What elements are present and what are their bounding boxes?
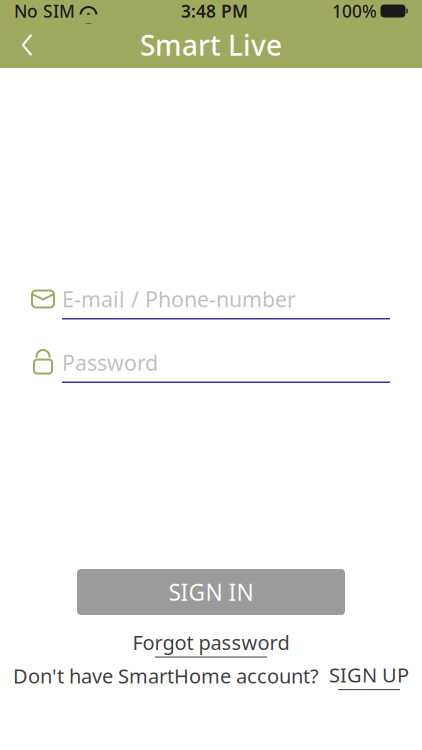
staticText: Password bbox=[62, 348, 158, 377]
staticText: 100% bbox=[332, 0, 377, 22]
button[interactable]: SIGN IN bbox=[77, 569, 345, 615]
staticText: E-mail / Phone-number bbox=[62, 285, 296, 313]
staticText: SIGN IN bbox=[168, 577, 253, 607]
staticText: Smart Live bbox=[140, 26, 282, 64]
button[interactable]: Forgot password bbox=[132, 629, 289, 658]
staticText: Don't have SmartHome account? bbox=[13, 663, 319, 689]
button[interactable]: SIGN UP bbox=[329, 662, 409, 690]
button[interactable]: Back bbox=[0, 22, 54, 68]
staticText: SIGN UP bbox=[329, 662, 409, 688]
staticText: 3:48 PM bbox=[181, 0, 248, 22]
staticText: No SIM bbox=[14, 0, 75, 22]
staticText: Forgot password bbox=[132, 629, 289, 656]
